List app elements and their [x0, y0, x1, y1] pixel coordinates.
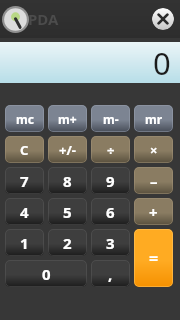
- button[interactable]: m-: [91, 105, 130, 132]
- button[interactable]: Close: [152, 8, 174, 30]
- staticText: 4: [20, 202, 29, 222]
- button[interactable]: 3: [91, 229, 130, 256]
- staticText: 1: [20, 233, 29, 253]
- staticText: 9: [106, 171, 115, 191]
- button[interactable]: C: [5, 136, 44, 163]
- button[interactable]: =: [134, 229, 173, 287]
- button[interactable]: 9: [91, 167, 130, 194]
- staticText: +: [149, 202, 158, 222]
- staticText: 7: [20, 171, 29, 191]
- button[interactable]: 2: [48, 229, 87, 256]
- staticText: 2: [63, 233, 72, 253]
- staticText: 5: [63, 202, 72, 222]
- staticText: mr: [145, 111, 163, 127]
- staticText: 6: [106, 202, 115, 222]
- staticText: 8: [63, 171, 72, 191]
- staticText: C: [20, 141, 29, 159]
- button[interactable]: ÷: [91, 136, 130, 163]
- button[interactable]: –: [134, 167, 173, 194]
- button[interactable]: mr: [134, 105, 173, 132]
- staticText: 3: [106, 233, 115, 253]
- button[interactable]: 1: [5, 229, 44, 256]
- button[interactable]: 7: [5, 167, 44, 194]
- button[interactable]: +: [134, 198, 173, 225]
- staticText: PDA: [28, 9, 59, 29]
- staticText: ÷: [107, 141, 115, 159]
- staticText: =: [149, 247, 159, 269]
- button[interactable]: ,: [91, 260, 130, 287]
- button[interactable]: ×: [134, 136, 173, 163]
- button[interactable]: mc: [5, 105, 44, 132]
- button[interactable]: 0: [5, 260, 87, 287]
- staticText: +/-: [59, 141, 76, 159]
- staticText: m-: [103, 111, 119, 127]
- staticText: –: [150, 171, 158, 191]
- staticText: ,: [108, 264, 113, 284]
- staticText: ×: [150, 141, 158, 159]
- button[interactable]: m+: [48, 105, 87, 132]
- staticText: mc: [16, 111, 34, 127]
- button[interactable]: 5: [48, 198, 87, 225]
- staticText: m+: [58, 111, 77, 127]
- button[interactable]: 8: [48, 167, 87, 194]
- staticText: 0: [153, 42, 171, 81]
- staticText: 0: [42, 264, 51, 284]
- button[interactable]: 4: [5, 198, 44, 225]
- button[interactable]: 6: [91, 198, 130, 225]
- button[interactable]: +/-: [48, 136, 87, 163]
